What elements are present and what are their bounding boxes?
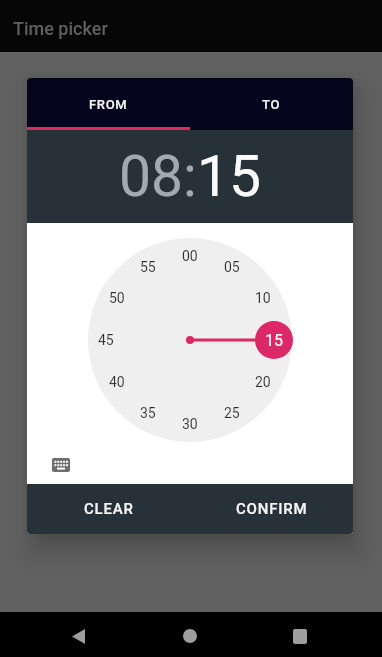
button[interactable]: TO xyxy=(190,78,353,130)
staticText: FROM xyxy=(89,97,128,112)
button[interactable]: CLEAR xyxy=(27,484,190,534)
staticText: 55 xyxy=(140,259,156,275)
button[interactable]: FROM xyxy=(27,78,190,130)
staticText: 15 xyxy=(265,331,283,350)
staticText: 45 xyxy=(98,332,114,348)
staticText: 05 xyxy=(224,259,240,275)
staticText: 30 xyxy=(182,416,198,432)
staticText: CONFIRM xyxy=(236,500,308,518)
staticText: TO xyxy=(262,97,281,112)
button[interactable] xyxy=(166,622,214,650)
staticText: 35 xyxy=(140,405,156,421)
staticText: CLEAR xyxy=(84,500,134,518)
button[interactable]: CONFIRM xyxy=(190,484,353,534)
staticText: 20 xyxy=(255,374,271,390)
staticText: 40 xyxy=(109,374,125,390)
staticText: Time picker xyxy=(13,18,108,39)
staticText: 25 xyxy=(224,405,240,421)
staticText: 00 xyxy=(182,248,198,264)
staticText: 50 xyxy=(109,290,125,306)
staticText: 10 xyxy=(255,290,271,306)
staticText: 15 xyxy=(197,143,262,210)
button[interactable] xyxy=(276,622,324,650)
staticText: 08: xyxy=(119,143,197,210)
button[interactable] xyxy=(42,448,80,482)
button[interactable] xyxy=(54,622,103,650)
